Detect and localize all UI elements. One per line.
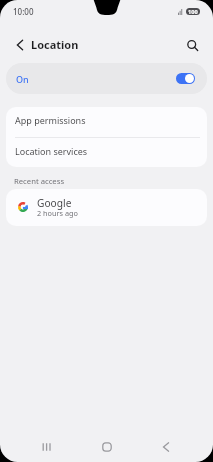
button[interactable]: Back bbox=[153, 434, 179, 460]
button[interactable]: Location services bbox=[6, 138, 207, 167]
staticText: Google bbox=[37, 196, 72, 210]
staticText: Location services bbox=[15, 145, 88, 157]
button[interactable]: Search bbox=[181, 34, 203, 56]
button[interactable]: On bbox=[6, 63, 207, 94]
staticText: 10:00 bbox=[13, 6, 34, 17]
button[interactable]: Recent apps bbox=[34, 434, 60, 460]
button[interactable]: Google bbox=[6, 189, 207, 226]
button[interactable]: Home bbox=[94, 434, 120, 460]
staticText: On bbox=[16, 73, 29, 85]
staticText: 100 bbox=[188, 8, 198, 15]
staticText: 2 hours ago bbox=[37, 208, 78, 218]
staticText: Location bbox=[31, 37, 79, 52]
button[interactable]: Back bbox=[9, 34, 31, 56]
button[interactable]: App permissions bbox=[6, 107, 207, 137]
staticText: Recent access bbox=[14, 176, 65, 186]
staticText: App permissions bbox=[15, 114, 86, 126]
